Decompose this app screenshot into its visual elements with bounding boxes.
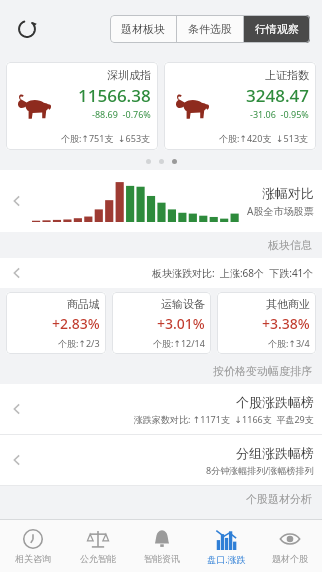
button[interactable]: 题材板块	[110, 15, 176, 43]
staticText: 运输设备	[161, 297, 205, 311]
staticText: 上证指数	[265, 68, 309, 82]
staticText: 条件选股	[188, 22, 232, 36]
button[interactable]: 条件选股	[177, 15, 243, 43]
staticText: 题材板块	[121, 22, 165, 36]
staticText: 板块信息	[268, 238, 312, 252]
staticText: 个股:↑420支 ↓513支	[219, 132, 309, 144]
staticText: 分组涨跌幅榜	[236, 445, 314, 461]
button[interactable]: 深圳成指	[6, 62, 158, 150]
other: More	[8, 264, 26, 282]
button[interactable]: 盘口.涨跌	[194, 520, 258, 572]
button[interactable]: More	[0, 435, 322, 485]
staticText: 盘口.涨跌	[207, 553, 246, 565]
button[interactable]: 公允智能	[65, 520, 130, 572]
button[interactable]: 相关咨询	[0, 520, 65, 572]
staticText: 商品城	[67, 297, 100, 311]
staticText: +3.38%	[262, 314, 310, 333]
staticText: 个股涨跌幅榜	[236, 394, 314, 410]
staticText: 行情观察	[255, 22, 299, 36]
button[interactable]: 其他商业	[217, 292, 316, 354]
other: More	[8, 451, 26, 469]
staticText: 涨跌家数对比: ↑1171支 ↓1166支 平盘29支	[134, 413, 314, 425]
staticText: 公允智能	[80, 553, 116, 564]
other: More	[8, 400, 26, 418]
staticText: 个股:↑3/4	[268, 337, 310, 349]
staticText: 11566.38	[78, 84, 151, 107]
staticText: 相关咨询	[15, 553, 51, 564]
staticText: 8分钟涨幅排列/涨幅榜排列	[206, 464, 314, 476]
button[interactable]: 行情观察	[244, 15, 310, 43]
staticText: 其他商业	[266, 297, 310, 311]
button[interactable]: 运输设备	[112, 292, 211, 354]
staticText: +3.01%	[157, 314, 205, 333]
staticText: 个股:↑2/3	[58, 337, 100, 349]
staticText: 题材个股	[272, 553, 308, 564]
button[interactable]: More	[0, 170, 322, 232]
staticText: A股全市场股票	[247, 204, 314, 218]
staticText: 个股题材分析	[246, 492, 312, 506]
staticText: 板块涨跌对比: 上涨:68个 下跌:41个	[152, 266, 314, 280]
button[interactable]: Refresh	[10, 12, 44, 46]
button[interactable]: 题材个股	[258, 520, 322, 572]
staticText: 智能资讯	[144, 553, 180, 564]
staticText: -88.69 -0.76%	[92, 108, 151, 120]
button[interactable]: 智能资讯	[130, 520, 194, 572]
staticText: 3248.47	[246, 84, 309, 107]
staticText: 个股:↑12/14	[153, 337, 205, 349]
staticText: 个股:↑751支 ↓653支	[61, 132, 151, 144]
staticText: +2.83%	[52, 314, 100, 333]
staticText: 涨幅对比	[262, 185, 314, 201]
button[interactable]: 商品城	[6, 292, 106, 354]
staticText: 深圳成指	[107, 68, 151, 82]
other: More	[8, 192, 26, 210]
button[interactable]: More	[0, 258, 322, 288]
staticText: 按价格变动幅度排序	[213, 364, 312, 378]
button[interactable]: 上证指数	[164, 62, 316, 150]
staticText: -31.06 -0.95%	[250, 108, 309, 120]
button[interactable]: More	[0, 384, 322, 434]
